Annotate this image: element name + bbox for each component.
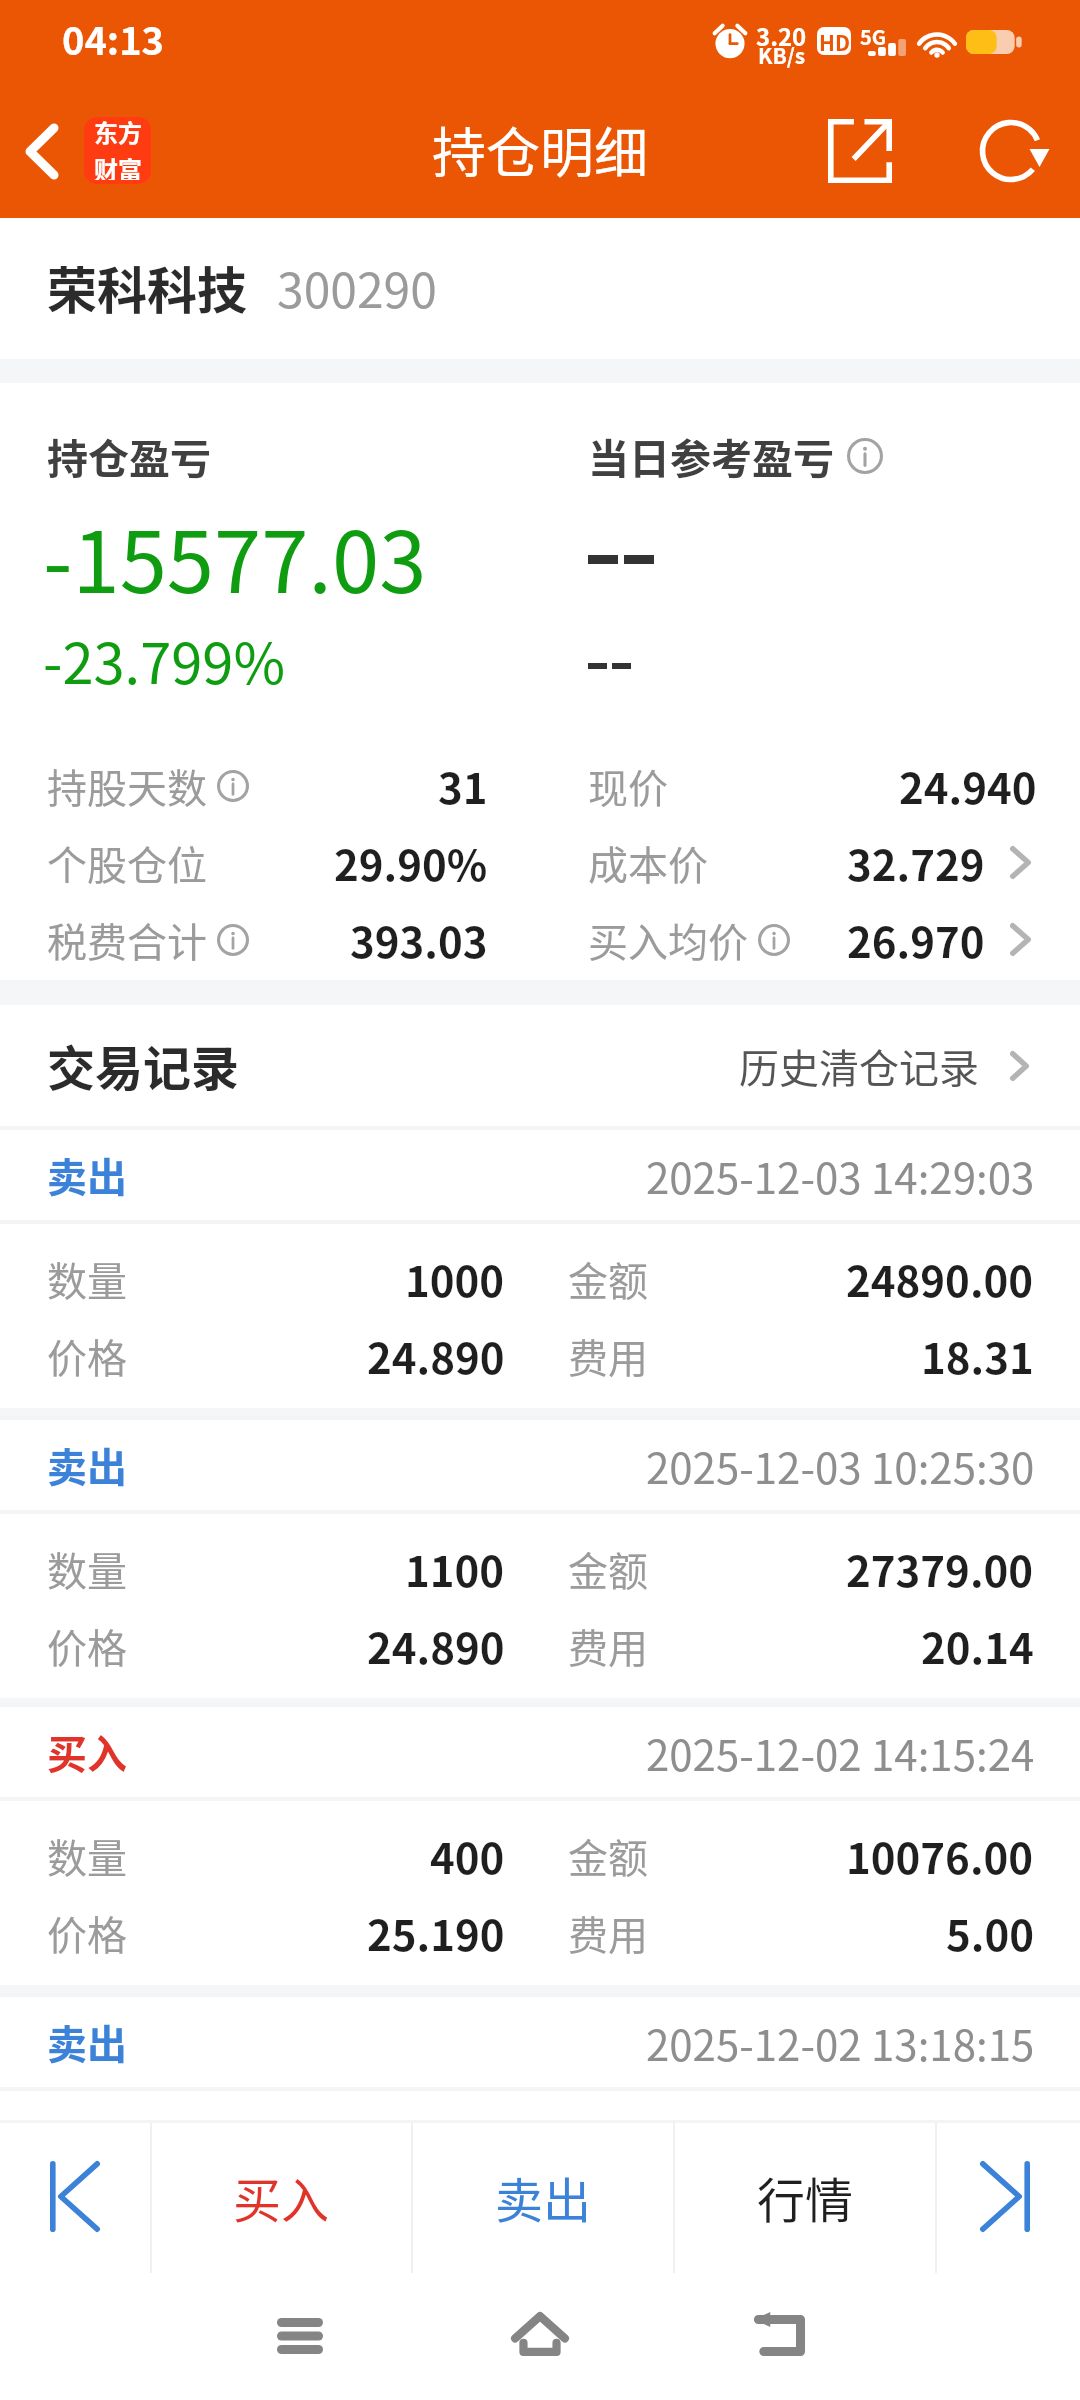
staticText: 31 [438,755,488,816]
staticText: 04:13 [62,11,165,66]
staticText: 财富 [94,151,142,180]
staticText: 2025-12-02 13:18:15 [646,2012,1035,2073]
staticText: 金额 [568,1540,648,1598]
staticText: 20.14 [921,1615,1034,1676]
button[interactable]: Share [800,91,920,211]
staticText: 29.90% [334,832,488,893]
staticText: 24890.00 [846,1248,1034,1309]
staticText: 24.890 [367,1615,505,1676]
staticText: 费用 [568,1327,648,1385]
staticText: 25.190 [367,1902,505,1963]
button[interactable]: 卖出 [0,1416,1080,1698]
staticText: 2025-12-03 14:29:03 [646,1145,1035,1206]
staticText: 数量 [47,1250,127,1308]
staticText: 荣科科技 [47,251,247,323]
button[interactable]: Back [0,90,82,218]
staticText: 现价 [588,757,668,815]
staticText: 历史清仓记录 [739,1037,979,1095]
staticText: -23.799% [43,619,285,700]
staticText: 卖出 [47,1436,127,1494]
staticText: 数量 [47,1827,127,1885]
staticText: 成本价 [588,834,708,892]
staticText: 价格 [47,1904,127,1962]
staticText: 费用 [568,1904,648,1962]
staticText: 金额 [568,1250,648,1308]
staticText: HD [819,27,850,55]
staticText: 2025-12-03 10:25:30 [646,1435,1035,1496]
button[interactable]: Home [485,2279,595,2389]
button[interactable]: 行情 [675,2120,935,2273]
staticText: 卖出 [495,2162,592,2232]
staticText: -15577.03 [43,494,427,617]
staticText: 10076.00 [846,1825,1034,1886]
staticText: 持股天数 [47,757,207,815]
staticText: 税费合计 [47,911,207,969]
staticText: 当日参考盈亏 [588,426,834,485]
button[interactable]: 历史清仓记录 [739,1037,1029,1095]
staticText: 2025-12-02 14:15:24 [646,1722,1035,1783]
button[interactable]: 荣科科技 [47,218,1080,359]
staticText: 买入均价 [588,911,748,969]
staticText: 400 [430,1825,505,1886]
staticText: KB/s [758,40,806,70]
button[interactable]: 卖出 [0,1993,1080,2091]
staticText: 费用 [568,1617,648,1675]
staticText: 27379.00 [846,1538,1034,1599]
staticText: 行情 [757,2162,854,2232]
staticText: 1100 [405,1538,505,1599]
staticText: 持仓盈亏 [47,426,211,485]
staticText: 卖出 [47,2013,127,2071]
staticText: 交易记录 [47,1030,240,1100]
staticText: 价格 [47,1327,127,1385]
staticText: 300290 [277,252,437,322]
staticText: 393.03 [350,909,488,970]
staticText: 持仓明细 [432,110,648,188]
staticText: 数量 [47,1540,127,1598]
staticText: 东方 [94,117,142,149]
button[interactable]: Recent apps [245,2281,355,2391]
staticText: 价格 [47,1617,127,1675]
button[interactable]: Last page [937,2120,1080,2273]
button[interactable]: Back [725,2279,835,2389]
staticText: 个股仓位 [47,834,207,892]
staticText: 32.729 [847,832,985,893]
button[interactable]: 卖出 [0,1126,1080,1408]
staticText: 买入 [47,1723,127,1781]
button[interactable]: 买入 [0,1703,1080,1985]
button[interactable]: Refresh [956,96,1076,216]
staticText: 26.970 [847,909,985,970]
button[interactable]: First page [0,2120,150,2273]
staticText: 5.00 [946,1902,1034,1963]
staticText: 24.890 [367,1325,505,1386]
staticText: 5G [860,22,887,51]
staticText: 3.20 [756,18,807,53]
staticText: 1000 [405,1248,505,1309]
staticText: 18.31 [921,1325,1034,1386]
staticText: 卖出 [47,1146,127,1204]
button[interactable]: 卖出 [413,2120,673,2273]
staticText: 金额 [568,1827,648,1885]
staticText: 24.940 [899,755,1037,816]
staticText: 买入 [233,2162,330,2232]
button[interactable]: 买入 [152,2120,411,2273]
